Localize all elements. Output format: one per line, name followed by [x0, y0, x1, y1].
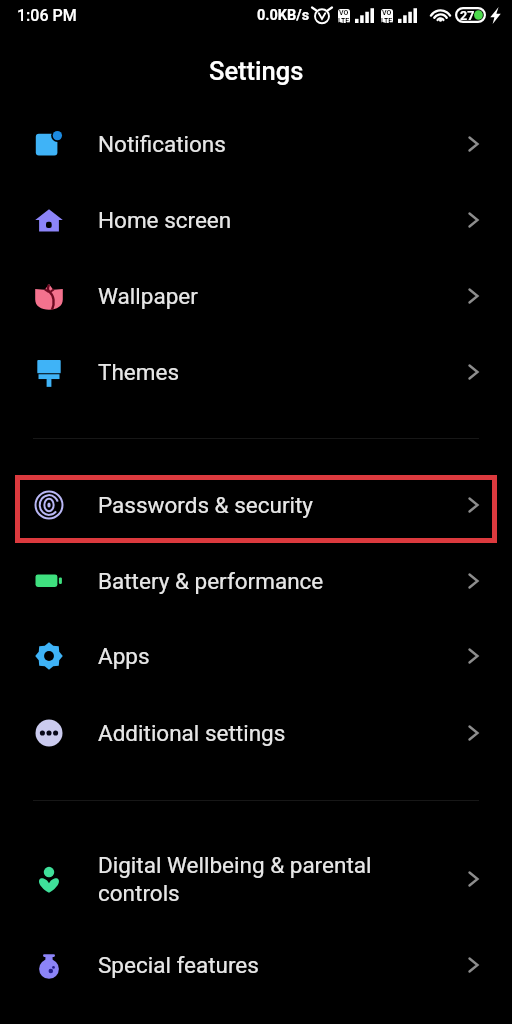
- staticText: 27: [460, 8, 475, 23]
- staticText: Settings: [209, 56, 304, 86]
- button[interactable]: Wallpaper: [0, 258, 512, 333]
- staticText: 1:06 PM: [17, 6, 77, 25]
- staticText: Digital Wellbeing & parental controls: [98, 852, 435, 906]
- staticText: VO: [382, 9, 392, 17]
- button[interactable]: Additional settings: [0, 695, 512, 770]
- staticText: Additional settings: [98, 720, 435, 746]
- staticText: Home screen: [98, 207, 435, 233]
- staticText: Passwords & security: [98, 492, 435, 518]
- button[interactable]: Battery & performance: [0, 543, 512, 618]
- button[interactable]: Digital Wellbeing & parental controls: [0, 841, 512, 916]
- button[interactable]: Special features: [0, 927, 512, 1002]
- staticText: VO: [339, 9, 349, 17]
- staticText: LTE: [338, 17, 350, 23]
- staticText: 0.0KB/s: [257, 7, 310, 24]
- staticText: Special features: [98, 952, 435, 978]
- button[interactable]: Apps: [0, 618, 512, 693]
- button[interactable]: Home screen: [0, 182, 512, 257]
- staticText: Notifications: [98, 131, 435, 157]
- button[interactable]: Themes: [0, 334, 512, 409]
- button[interactable]: Passwords & security: [0, 467, 512, 542]
- staticText: LTE: [381, 17, 393, 23]
- staticText: Wallpaper: [98, 283, 435, 309]
- button[interactable]: Notifications: [0, 106, 512, 181]
- staticText: Battery & performance: [98, 568, 435, 594]
- staticText: Apps: [98, 643, 435, 669]
- staticText: Themes: [98, 359, 435, 385]
